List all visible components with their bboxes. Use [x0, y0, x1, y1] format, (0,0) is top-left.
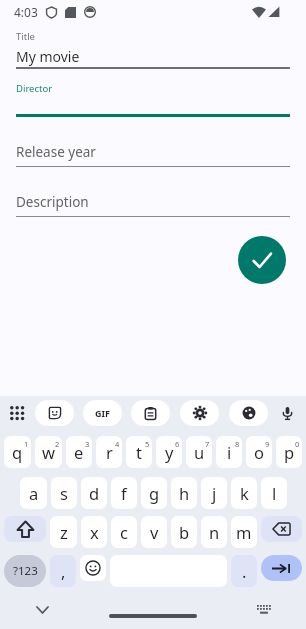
button[interactable]: q — [4, 436, 31, 468]
button[interactable]: ?123 — [4, 555, 46, 587]
staticText: d — [89, 482, 100, 504]
staticText: v — [150, 521, 159, 543]
staticText: 8 — [235, 439, 240, 449]
button[interactable]: s — [51, 477, 77, 509]
button[interactable] — [131, 400, 170, 426]
staticText: u — [194, 441, 205, 463]
button[interactable] — [261, 555, 302, 581]
button[interactable]: GIF — [83, 400, 122, 426]
button[interactable]: y — [156, 436, 182, 468]
button[interactable] — [229, 400, 268, 426]
button[interactable] — [4, 516, 46, 542]
staticText: j — [212, 482, 217, 504]
button[interactable]: g — [141, 477, 167, 509]
staticText: f — [121, 482, 127, 504]
staticText: 4 — [115, 439, 120, 449]
staticText: n — [209, 521, 220, 543]
button[interactable] — [80, 555, 106, 581]
staticText: My movie — [16, 47, 80, 66]
staticText: 0 — [295, 439, 300, 449]
button[interactable]: h — [171, 477, 197, 509]
staticText: l — [272, 482, 277, 504]
staticText: c — [120, 521, 128, 543]
button[interactable]: m — [231, 516, 257, 548]
button[interactable]: w — [35, 436, 62, 468]
staticText: z — [60, 521, 68, 543]
button[interactable]: j — [201, 477, 227, 509]
staticText: p — [284, 441, 295, 463]
staticText: 5 — [145, 439, 150, 449]
staticText: . — [242, 560, 247, 582]
staticText: 3 — [85, 439, 90, 449]
staticText: i — [227, 441, 232, 463]
button[interactable]: c — [111, 516, 137, 548]
button[interactable]: Description — [16, 193, 290, 211]
button[interactable] — [8, 400, 26, 426]
staticText: k — [240, 482, 249, 504]
button[interactable]: x — [81, 516, 107, 548]
button[interactable]: v — [141, 516, 167, 548]
button[interactable] — [180, 400, 219, 426]
button[interactable]: k — [231, 477, 257, 509]
staticText: GIF — [95, 407, 110, 419]
staticText: Title — [16, 30, 35, 43]
staticText: w — [42, 441, 55, 463]
staticText: o — [254, 441, 264, 463]
staticText: b — [179, 521, 190, 543]
staticText: 1 — [24, 439, 29, 449]
button[interactable]: z — [50, 516, 77, 548]
staticText: g — [149, 482, 160, 504]
staticText: s — [60, 482, 68, 504]
button[interactable]: . — [231, 555, 257, 587]
button[interactable]: d — [81, 477, 107, 509]
button[interactable]: Release year — [16, 143, 290, 161]
button[interactable]: f — [111, 477, 137, 509]
button[interactable]: , — [50, 555, 76, 587]
staticText: m — [236, 521, 252, 543]
staticText: 6 — [175, 439, 180, 449]
button[interactable] — [278, 400, 296, 426]
staticText: Description — [16, 193, 89, 211]
button[interactable]: i — [216, 436, 242, 468]
button[interactable]: My movie — [16, 47, 290, 66]
staticText: Release year — [16, 143, 96, 161]
button[interactable]: u — [186, 436, 212, 468]
staticText: a — [29, 482, 39, 504]
button[interactable] — [261, 516, 302, 542]
button[interactable]: l — [261, 477, 287, 509]
button[interactable]: r — [96, 436, 122, 468]
staticText: 2 — [55, 439, 60, 449]
staticText: Director — [16, 82, 53, 95]
staticText: , — [61, 560, 66, 582]
staticText: e — [74, 441, 84, 463]
button[interactable]: t — [126, 436, 152, 468]
staticText: x — [90, 521, 99, 543]
staticText: ?123 — [13, 563, 38, 579]
staticText: 4:03 — [14, 4, 38, 20]
button[interactable]: p — [276, 436, 302, 468]
button[interactable] — [238, 236, 286, 284]
button[interactable]: e — [66, 436, 92, 468]
button[interactable]: a — [20, 477, 47, 509]
staticText: h — [179, 482, 190, 504]
button[interactable]: b — [171, 516, 197, 548]
button[interactable] — [35, 400, 74, 426]
staticText: q — [12, 441, 23, 463]
button[interactable]: o — [246, 436, 272, 468]
staticText: y — [165, 441, 174, 463]
staticText: 9 — [265, 439, 270, 449]
staticText: t — [136, 441, 142, 463]
button[interactable]: n — [201, 516, 227, 548]
staticText: r — [106, 441, 113, 463]
staticText: 7 — [205, 439, 210, 449]
